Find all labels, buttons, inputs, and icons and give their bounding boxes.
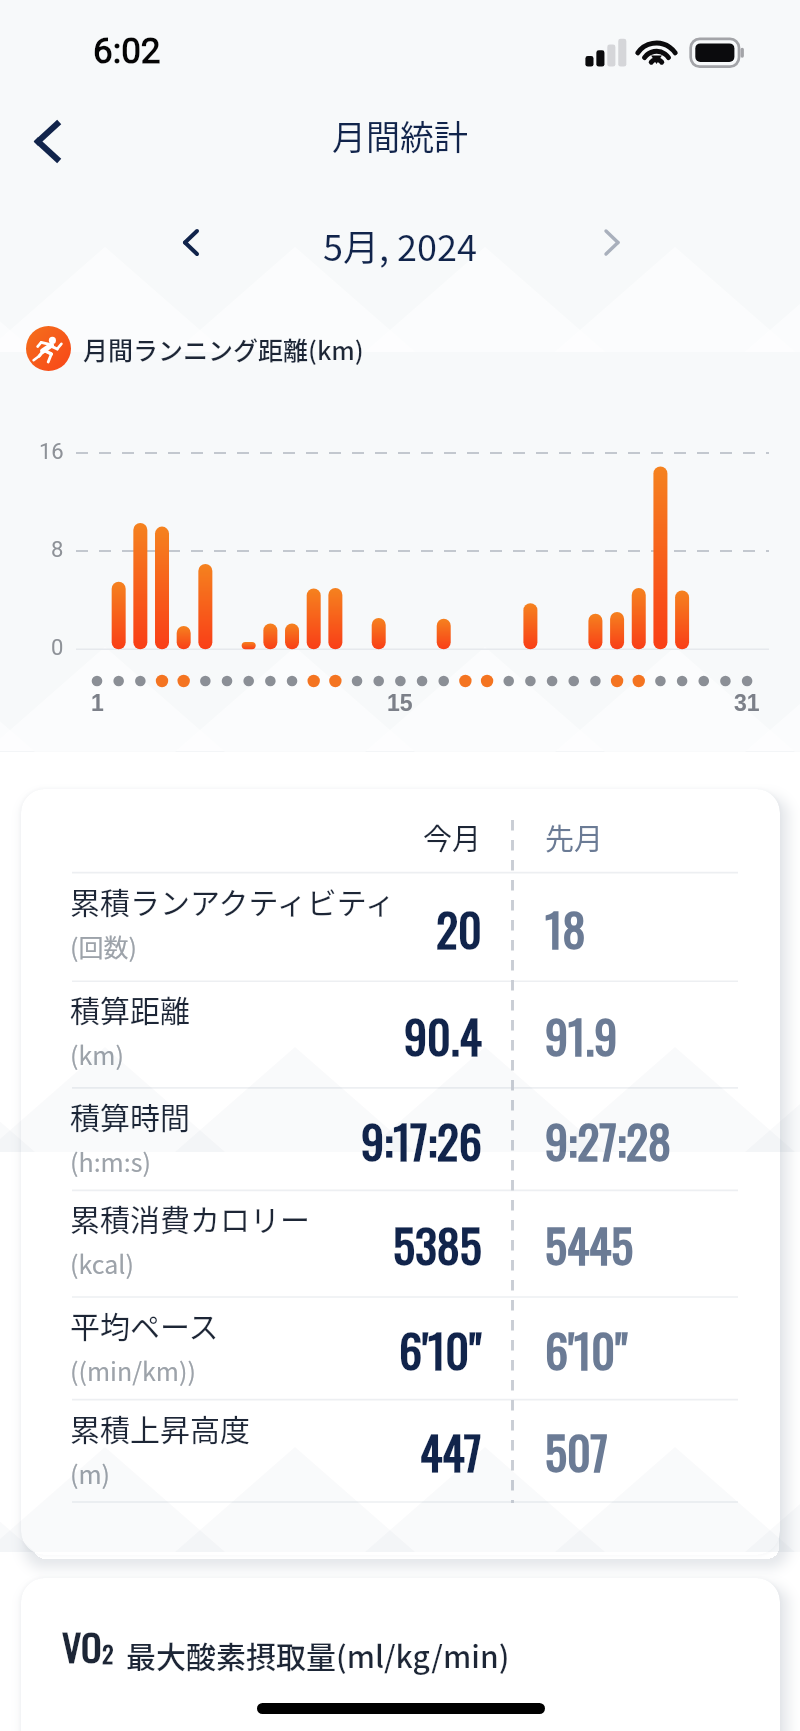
staticText: 20 [436,894,482,962]
staticText: 9:17:26 [361,1106,482,1174]
staticText: (kcal) [70,1245,134,1281]
button[interactable]: Previous month [159,210,223,274]
staticText: 累積ランアクティビティ [70,879,395,921]
staticText: VO [62,1618,102,1674]
staticText: 今月 [423,816,482,858]
staticText: 5385 [393,1210,482,1278]
staticText: 15 [387,690,413,716]
staticText: ((min/km)) [70,1352,196,1388]
button[interactable]: 平均ペース [21,1297,780,1400]
staticText: 累積上昇高度 [70,1406,250,1448]
staticText: 5445 [545,1210,634,1278]
staticText: 積算距離 [70,987,190,1029]
staticText: 5月, 2024 [0,219,800,271]
button[interactable]: 累積上昇高度 [21,1400,780,1502]
staticText: 先月 [545,816,604,858]
button[interactable]: 累積ランアクティビティ [21,873,780,982]
staticText: 9:27:28 [545,1106,671,1174]
staticText: 月間統計 [0,111,800,160]
staticText: 18 [545,894,586,962]
staticText: 2 [102,1635,114,1671]
staticText: 平均ペース [70,1303,219,1345]
staticText: 31 [734,690,760,716]
staticText: 月間ランニング距離(km) [83,331,364,367]
staticText: 1 [91,690,104,716]
staticText: 6'10" [545,1315,628,1383]
button[interactable]: Next month [580,210,644,274]
button[interactable]: 累積消費カロリー [21,1190,780,1297]
button[interactable]: Back [14,108,80,174]
staticText: 8 [51,537,64,563]
staticText: (km) [70,1036,124,1072]
staticText: (m) [70,1455,111,1491]
staticText: 6:02 [93,31,161,72]
staticText: 累積消費カロリー [70,1196,310,1238]
staticText: 90.4 [404,1001,482,1069]
staticText: 16 [39,439,64,465]
staticText: 507 [545,1417,608,1485]
staticText: (h:m:s) [70,1143,151,1179]
button[interactable]: 積算距離 [21,981,780,1088]
button[interactable]: 積算時間 [21,1088,780,1191]
staticText: 最大酸素摂取量(ml/kg/min) [126,1633,510,1676]
staticText: (回数) [70,928,137,964]
staticText: 91.9 [545,1001,618,1069]
staticText: 積算時間 [70,1094,190,1136]
staticText: 447 [420,1417,482,1485]
staticText: 0 [51,635,64,661]
staticText: 6'10" [399,1315,482,1383]
